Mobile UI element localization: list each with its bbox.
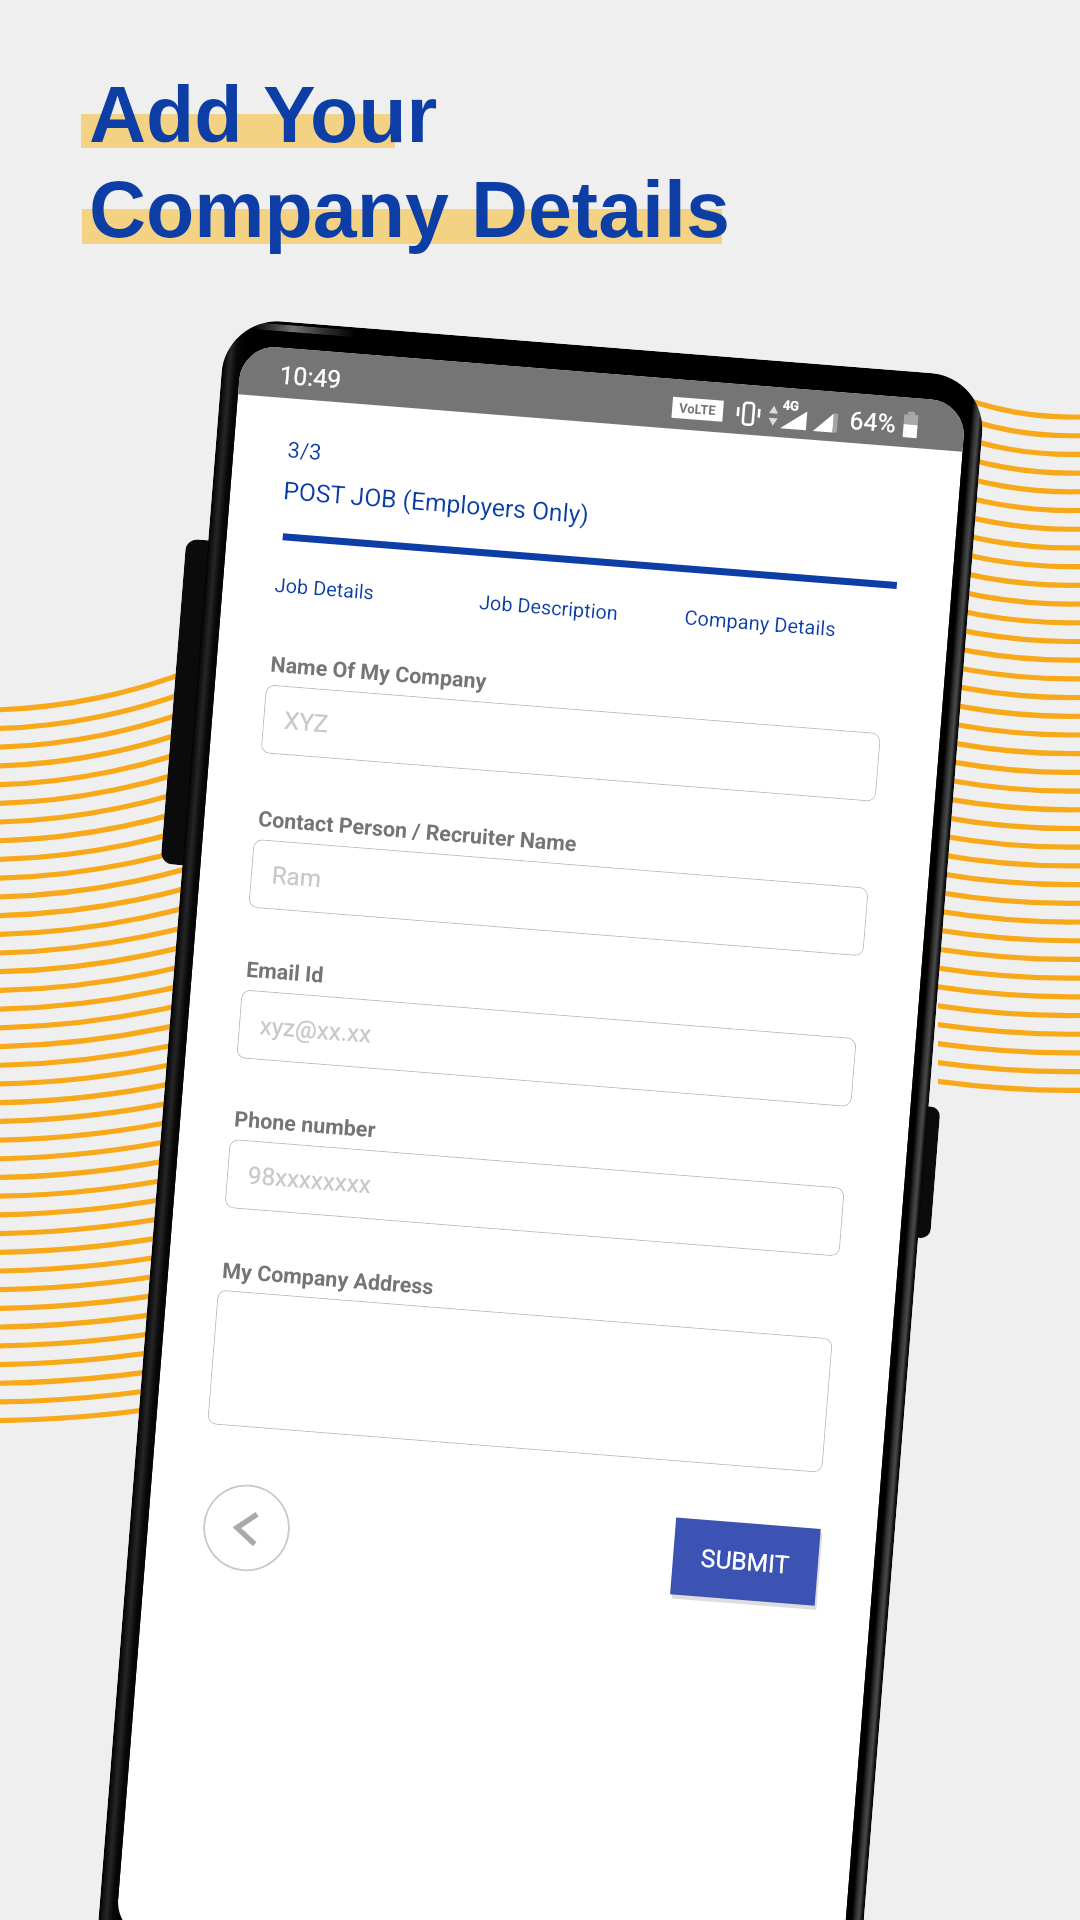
staticText: Add Your [89,70,438,158]
staticText: XYZ [283,707,330,738]
staticText: Email Id [245,957,325,988]
staticText: Name Of My Company [270,652,488,694]
button[interactable]: xyz@xx.xx [236,989,857,1107]
staticText: Phone number [233,1106,377,1142]
staticText: 3/3 [287,437,323,466]
button[interactable]: XYZ [260,684,881,802]
staticText: VoLTE [679,400,717,418]
staticText: xyz@xx.xx [259,1012,373,1049]
button[interactable]: SUBMIT [670,1517,821,1606]
staticText: POST JOB (Employers Only) [282,476,591,529]
staticText: Contact Person / Recruiter Name [257,806,578,856]
staticText: SUBMIT [700,1544,791,1580]
staticText: 4G [782,397,800,414]
button[interactable]: Ram [248,839,869,956]
staticText: Company Details [89,165,730,253]
staticText: Job Description [478,591,620,625]
staticText: My Company Address [221,1258,435,1299]
button[interactable]: 98xxxxxxxx [224,1139,845,1257]
staticText: 64% [849,406,898,438]
button[interactable]: Back [200,1481,293,1575]
staticText: 10:49 [278,360,342,394]
staticText: Company Details [684,605,837,641]
staticText: Ram [271,861,323,893]
staticText: 98xxxxxxxx [247,1161,373,1199]
button[interactable] [207,1289,833,1473]
staticText: Job Details [274,574,375,605]
